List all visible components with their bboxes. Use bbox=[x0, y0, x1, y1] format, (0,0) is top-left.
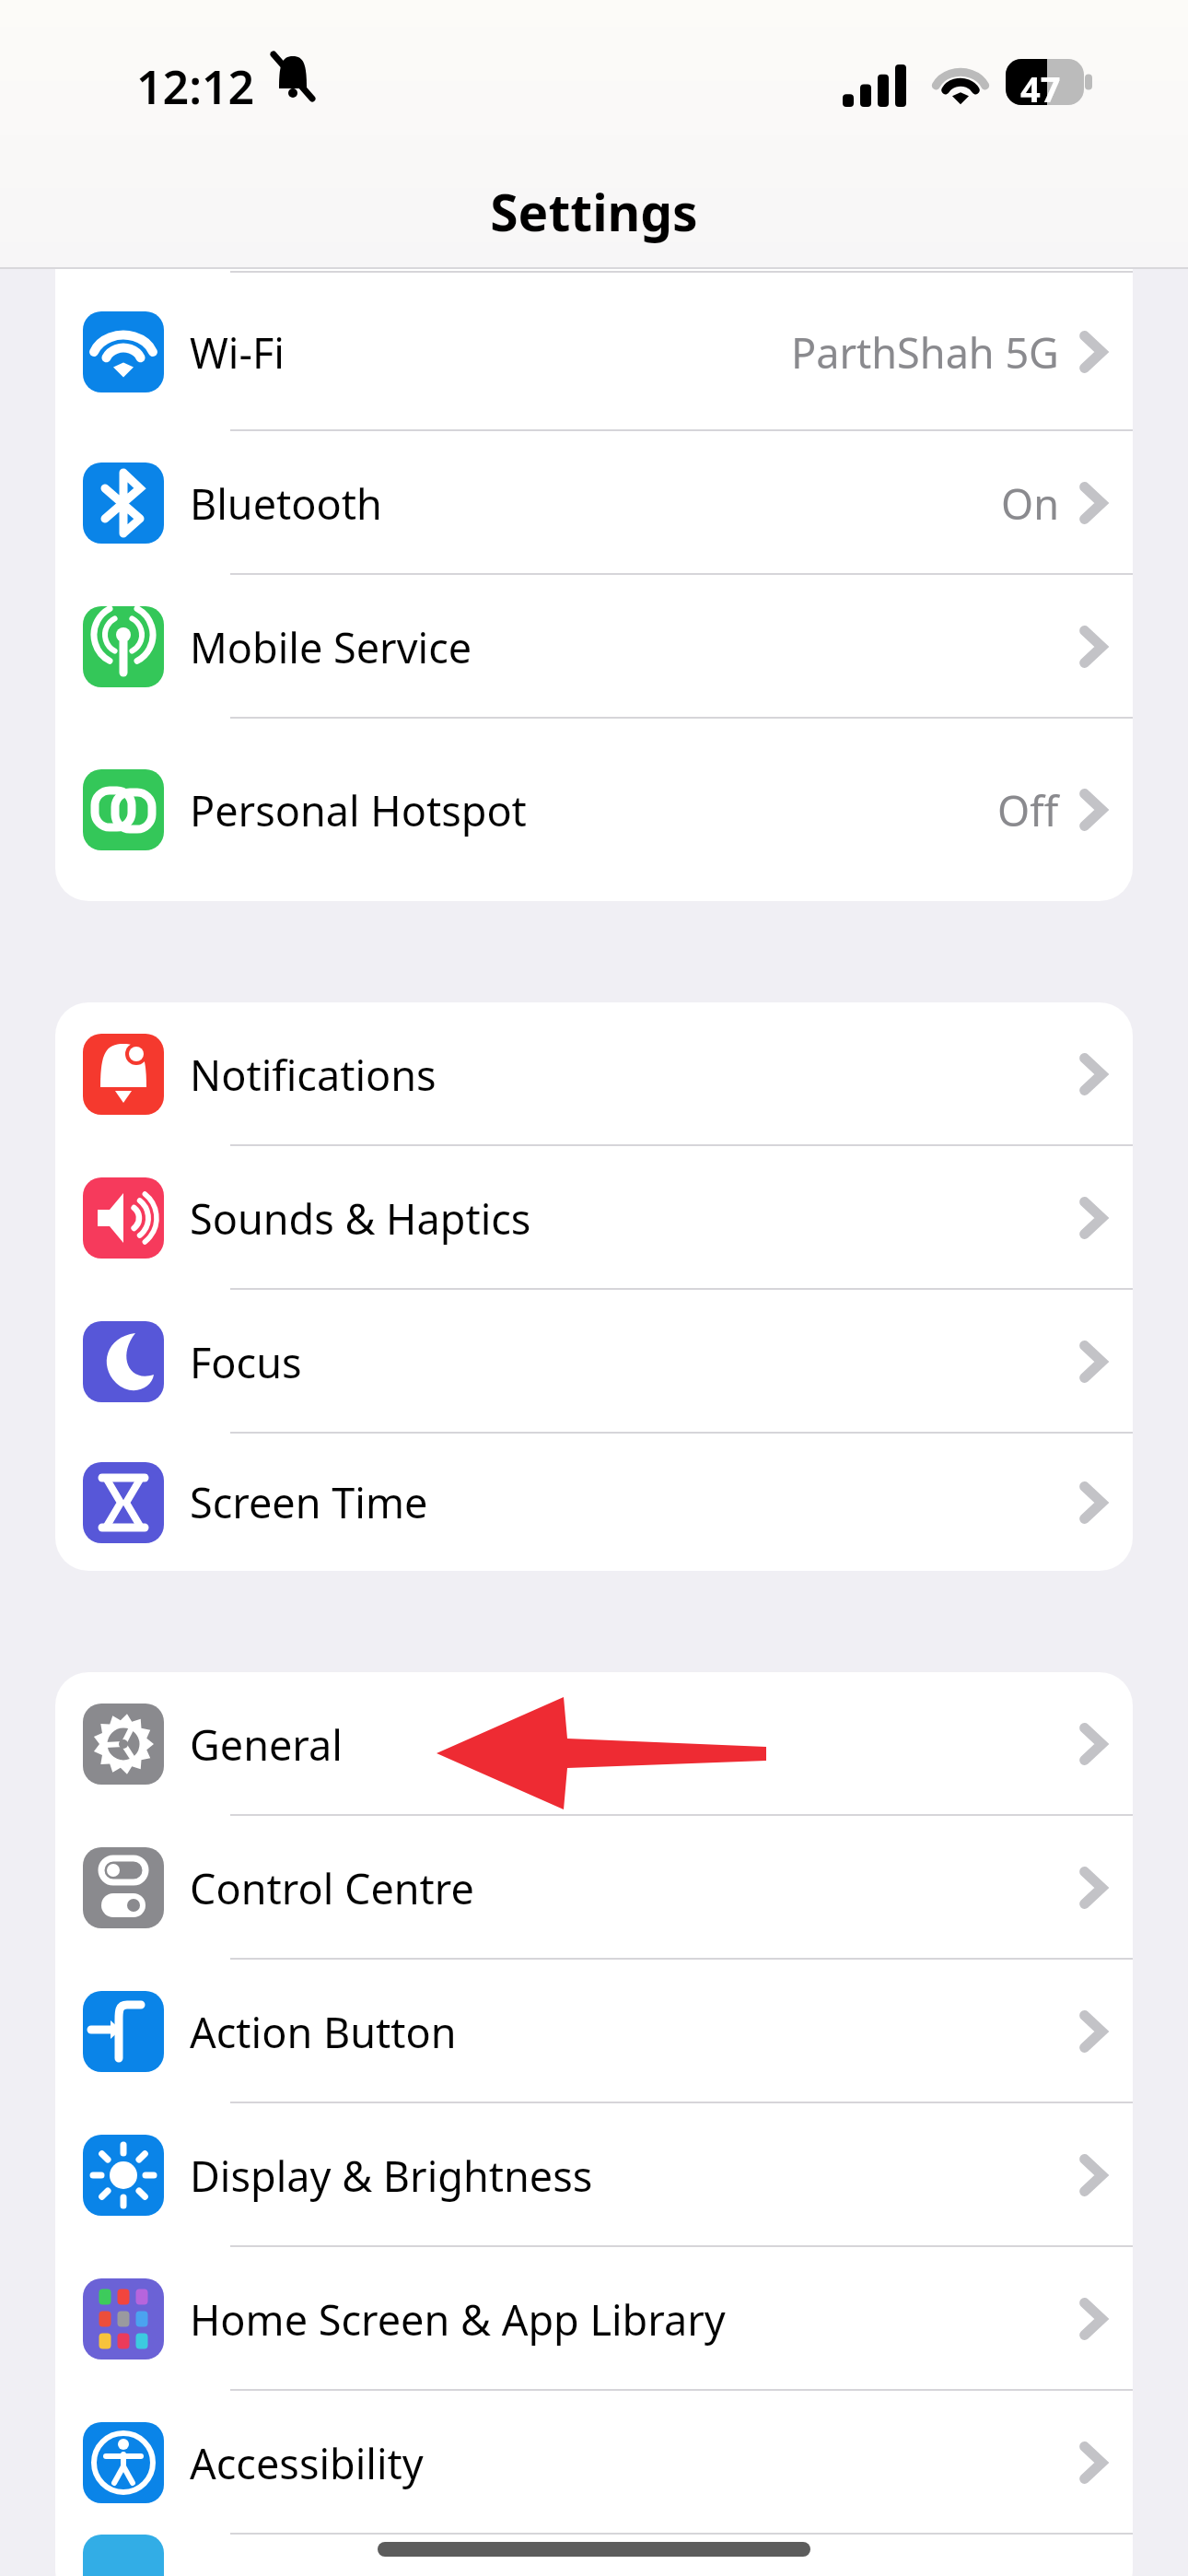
button[interactable]: Display & Brightness bbox=[55, 2103, 1133, 2247]
staticText: 47 bbox=[1020, 64, 1061, 112]
staticText: Off bbox=[997, 782, 1059, 838]
button[interactable]: Personal Hotspot bbox=[55, 719, 1133, 901]
staticText: Home Screen & App Library bbox=[190, 2291, 726, 2348]
staticText: 12:12 bbox=[136, 55, 255, 118]
button[interactable]: Wi-Fi bbox=[55, 273, 1133, 431]
other: Wallpaper bbox=[83, 2535, 164, 2576]
other: Action Button bbox=[83, 1991, 164, 2072]
staticText: Wi-Fi bbox=[190, 324, 285, 381]
staticText: Notifications bbox=[190, 1047, 437, 1103]
other: Display & Brightness bbox=[83, 2135, 164, 2216]
other: Mobile Service bbox=[83, 606, 164, 687]
other: Accessibility bbox=[83, 2422, 164, 2503]
staticText: Display & Brightness bbox=[190, 2148, 593, 2204]
button[interactable]: Mobile Service bbox=[55, 575, 1133, 719]
other: Wi-Fi bbox=[83, 311, 164, 392]
other: Notifications bbox=[83, 1034, 164, 1115]
other: Control Centre bbox=[83, 1847, 164, 1928]
button[interactable]: Airplane Mode bbox=[55, 127, 1133, 273]
staticText: Settings bbox=[490, 177, 698, 246]
other: Focus bbox=[83, 1321, 164, 1402]
staticText: Action Button bbox=[190, 2004, 457, 2060]
other: Bluetooth bbox=[83, 463, 164, 544]
staticText: Personal Hotspot bbox=[190, 782, 527, 838]
button[interactable]: Action Button bbox=[55, 1960, 1133, 2103]
other: General bbox=[83, 1704, 164, 1785]
staticText: Control Centre bbox=[190, 1860, 474, 1916]
button[interactable]: Notifications bbox=[55, 1002, 1133, 1146]
other: Screen Time bbox=[83, 1462, 164, 1543]
staticText: Accessibility bbox=[190, 2435, 424, 2491]
staticText: Screen Time bbox=[190, 1474, 428, 1530]
staticText: Bluetooth bbox=[190, 475, 382, 532]
button[interactable]: Accessibility bbox=[55, 2391, 1133, 2535]
button[interactable]: Control Centre bbox=[55, 1816, 1133, 1960]
button[interactable]: General bbox=[55, 1672, 1133, 1816]
staticText: Mobile Service bbox=[190, 619, 472, 675]
staticText: ParthShah 5G bbox=[791, 324, 1059, 381]
button[interactable]: Focus bbox=[55, 1290, 1133, 1434]
staticText: On bbox=[1001, 475, 1059, 532]
other: Sounds bbox=[83, 1177, 164, 1259]
other: Home Screen bbox=[83, 2278, 164, 2359]
button[interactable]: Home Screen bbox=[55, 2247, 1133, 2391]
button[interactable]: Screen Time bbox=[55, 1434, 1133, 1571]
button[interactable]: Bluetooth bbox=[55, 431, 1133, 575]
button[interactable]: Wallpaper bbox=[55, 2535, 1133, 2576]
staticText: Focus bbox=[190, 1334, 302, 1390]
staticText: Sounds & Haptics bbox=[190, 1190, 531, 1247]
staticText: General bbox=[190, 1716, 343, 1773]
other: Personal Hotspot bbox=[83, 769, 164, 850]
button[interactable]: Sounds bbox=[55, 1146, 1133, 1290]
